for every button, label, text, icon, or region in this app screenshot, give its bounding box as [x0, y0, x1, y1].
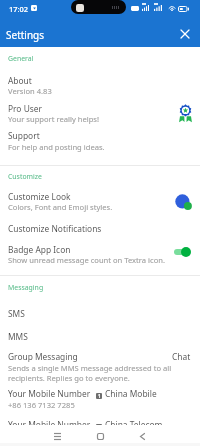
button[interactable]: Recent apps	[47, 426, 67, 446]
staticText: Customize Notifications	[8, 223, 102, 234]
button[interactable]: Support	[0, 128, 200, 155]
staticText: Version 4.83	[8, 86, 52, 96]
staticText: +86 136 7132 7285	[8, 400, 75, 410]
staticText: 1	[98, 393, 101, 399]
staticText: Pro User	[8, 103, 42, 114]
button[interactable]: Customize Look	[0, 187, 200, 216]
staticText: Your support really helps!	[8, 114, 100, 124]
button[interactable]: Your Mobile Number	[0, 384, 200, 412]
button[interactable]: MMS	[0, 324, 200, 346]
button[interactable]: About	[0, 71, 200, 99]
staticText: China Mobile	[105, 388, 157, 399]
button[interactable]: Badge App Icon	[0, 238, 200, 267]
staticText: Customize Look	[8, 191, 71, 202]
staticText: Group Messaging	[8, 351, 78, 362]
button[interactable]: Group Messaging	[0, 346, 200, 384]
staticText: Support	[8, 130, 40, 141]
staticText: 17:02	[9, 4, 28, 14]
staticText: Badge App Icon	[8, 244, 71, 255]
staticText: Your Mobile Number	[8, 388, 91, 399]
button[interactable]: Home	[90, 426, 110, 446]
staticText: About	[8, 75, 32, 86]
button[interactable]: SMS	[0, 301, 200, 324]
staticText: Messaging	[8, 283, 44, 292]
staticText: SMS	[8, 308, 25, 319]
button[interactable]	[173, 247, 191, 257]
staticText: Show unread message count on Textra icon…	[8, 255, 165, 265]
staticText: 1	[98, 424, 101, 430]
staticText: Sends a single MMS message addressed to …	[8, 363, 200, 383]
staticText: Settings	[6, 28, 45, 42]
staticText: General	[8, 54, 34, 63]
staticText: China Telecom	[105, 419, 163, 430]
button[interactable]: Back	[132, 426, 152, 446]
staticText: Chat	[172, 351, 191, 362]
button[interactable]: Close	[175, 24, 195, 44]
staticText: MMS	[8, 331, 28, 342]
staticText: Your Mobile Number	[8, 419, 91, 430]
button[interactable]: Pro User	[0, 99, 200, 128]
staticText: Customize	[8, 172, 42, 181]
button[interactable]: Your Mobile Number	[0, 412, 200, 442]
button[interactable]: Customize Notifications	[0, 216, 200, 239]
staticText: For help and posting ideas.	[8, 142, 105, 152]
staticText: Colors, Font and Emoji styles.	[8, 202, 113, 212]
